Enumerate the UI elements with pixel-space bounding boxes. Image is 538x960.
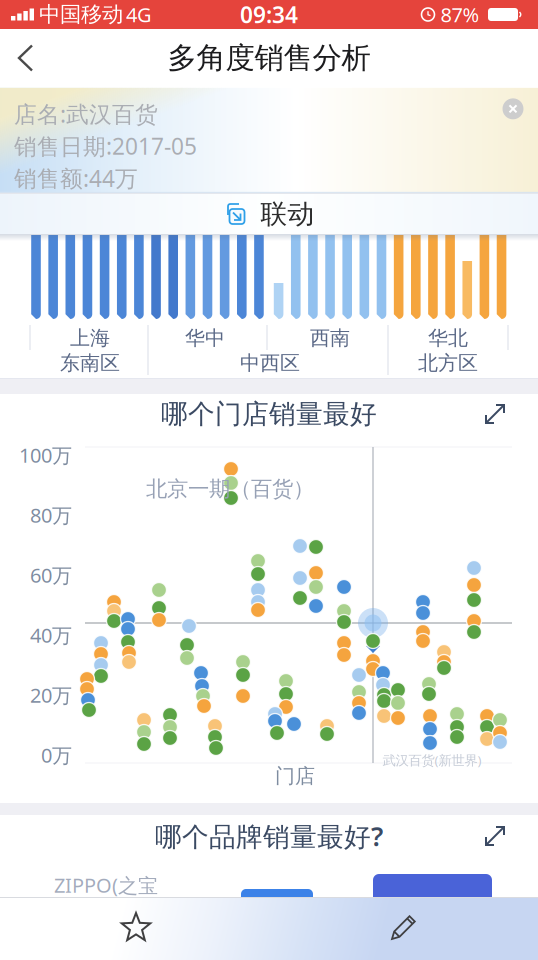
staticText: 100万 [19,442,72,468]
staticText: 销售日期:2017-05 [14,131,197,161]
button[interactable]: Favorite [108,902,164,952]
staticText: 中西区 [240,351,300,375]
staticText: 中国移动 [39,1,123,28]
button[interactable]: Edit [376,902,432,952]
staticText: 华北 [428,326,468,350]
staticText: 店名:武汉百货 [14,99,158,129]
staticText: 华中 [185,326,225,350]
staticText: 西南 [310,326,350,350]
staticText: ZIPPO(之宝 [54,872,158,898]
button[interactable]: Expand chart [478,819,512,853]
staticText: 联动 [260,198,314,230]
staticText: 80万 [30,502,72,528]
staticText: 多角度销售分析 [167,40,370,76]
button[interactable]: Expand chart [478,397,512,431]
staticText: 东南区 [60,351,120,375]
staticText: 武汉百货(新世界) [382,751,481,769]
staticText: 北方区 [418,351,478,375]
staticText: 60万 [30,562,72,588]
staticText: 门店 [275,764,315,788]
staticText: 北京一期（百货） [146,476,314,502]
staticText: 4G [126,1,152,28]
button[interactable]: 联动 [189,193,349,235]
staticText: 87% [440,1,479,28]
staticText: 销售额:44万 [14,163,138,193]
staticText: 09:34 [240,0,298,29]
button[interactable]: Close [498,94,528,124]
staticText: 哪个品牌销量最好? [155,818,383,854]
staticText: 0万 [41,742,72,768]
staticText: 哪个门店销量最好 [161,398,377,430]
button[interactable]: Back [10,35,54,80]
staticText: 20万 [30,682,72,708]
staticText: 上海 [70,326,110,350]
staticText: 40万 [30,622,72,648]
